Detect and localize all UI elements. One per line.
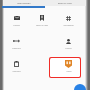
staticText: RECENTLY USED <box>58 2 72 4</box>
staticText: NEW LOCATION <box>17 2 31 4</box>
button[interactable]: Coordinates <box>55 13 81 36</box>
staticText: Clipboard <box>12 70 21 72</box>
button[interactable]: Projection <box>3 36 29 59</box>
button[interactable]: NEW LOCATION <box>3 0 44 6</box>
button[interactable]: RECENTLY USED <box>44 0 86 6</box>
button[interactable]: Address <box>3 13 29 36</box>
staticText: Home <box>66 70 72 72</box>
staticText: Select on map <box>36 24 48 26</box>
staticText: Projection <box>12 47 21 49</box>
button[interactable]: Contact <box>55 36 81 59</box>
button[interactable]: Select on map <box>29 13 55 36</box>
button[interactable]: Clipboard <box>3 59 29 82</box>
staticText: Coordinates <box>63 24 74 26</box>
staticText: Contact <box>65 47 72 49</box>
button[interactable]: Add location <box>74 84 86 90</box>
button[interactable]: Home <box>55 59 81 82</box>
staticText: Address <box>13 24 20 26</box>
